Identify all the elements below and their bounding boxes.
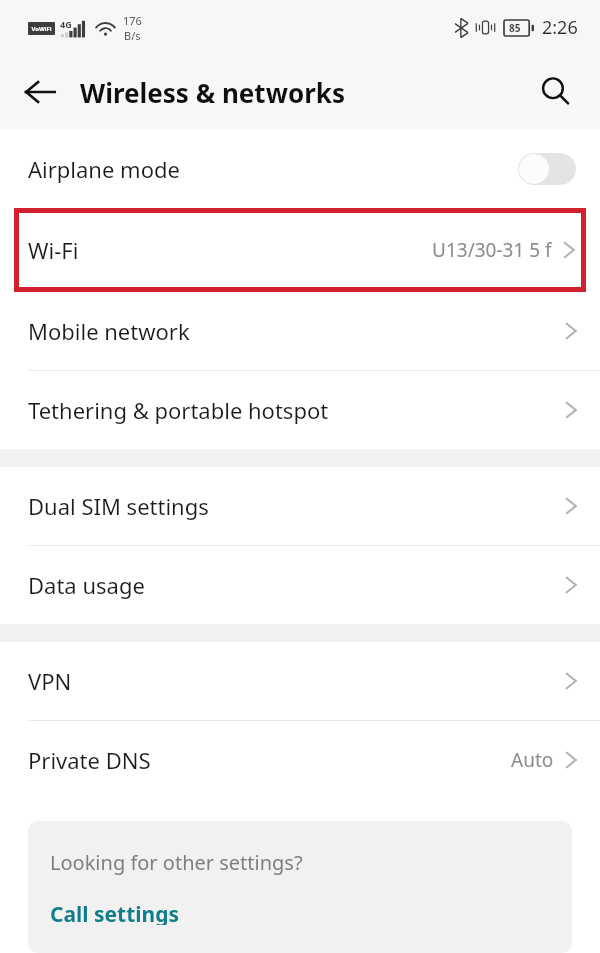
staticText: 2:26 <box>542 15 578 40</box>
staticText: Dual SIM settings <box>28 491 209 521</box>
staticText: Call settings <box>50 900 180 925</box>
button[interactable]: Call settings <box>50 900 180 925</box>
button[interactable]: Dual SIM settings <box>0 467 600 545</box>
staticText: Looking for other settings? <box>50 849 303 876</box>
button[interactable]: Back <box>12 64 68 120</box>
button[interactable]: Data usage <box>0 546 600 624</box>
staticText: Mobile network <box>28 316 190 346</box>
staticText: 176 <box>123 13 142 28</box>
staticText: 85 <box>509 21 521 35</box>
staticText: U13/30-31 5 f <box>432 237 552 263</box>
staticText: Data usage <box>28 570 145 600</box>
staticText: Tethering & portable hotspot <box>28 395 329 425</box>
button[interactable]: Private DNS <box>0 721 600 799</box>
button[interactable]: Mobile network <box>0 292 600 370</box>
button[interactable]: Wi-Fi <box>0 208 600 292</box>
button[interactable]: Airplane mode toggle <box>518 153 576 185</box>
staticText: Airplane mode <box>28 154 180 184</box>
staticText: VPN <box>28 666 72 696</box>
button[interactable]: Airplane mode <box>0 129 600 208</box>
button[interactable]: VPN <box>0 642 600 720</box>
button[interactable]: Tethering & portable hotspot <box>0 371 600 449</box>
staticText: B/s <box>124 28 141 43</box>
staticText: Private DNS <box>28 745 151 775</box>
staticText: Wireless & networks <box>80 75 345 110</box>
staticText: 4G <box>60 18 72 30</box>
staticText: Wi-Fi <box>28 235 79 265</box>
staticText: VoWiFi <box>31 25 52 33</box>
button[interactable]: Search <box>528 64 584 120</box>
staticText: Auto <box>511 747 554 773</box>
